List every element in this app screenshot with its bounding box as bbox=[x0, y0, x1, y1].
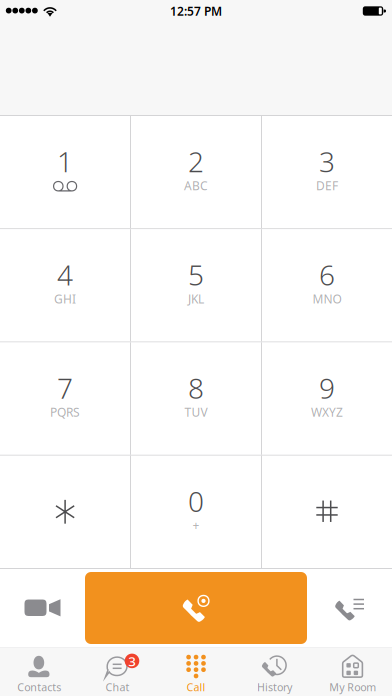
button[interactable] bbox=[0, 456, 130, 568]
staticText: My Room bbox=[329, 680, 376, 694]
staticText: 1 bbox=[57, 143, 73, 180]
staticText: Chat bbox=[106, 680, 130, 694]
staticText: 2 bbox=[188, 143, 204, 180]
staticText: WXYZ bbox=[311, 404, 343, 420]
button[interactable]: 2 bbox=[131, 116, 261, 228]
staticText: 5 bbox=[188, 256, 204, 293]
button[interactable]: 5 bbox=[131, 229, 261, 341]
button[interactable]: Call bbox=[157, 647, 235, 696]
staticText: Call bbox=[186, 680, 205, 694]
staticText: 6 bbox=[319, 256, 335, 293]
button[interactable]: 6 bbox=[262, 229, 392, 341]
staticText: TUV bbox=[184, 404, 207, 420]
staticText: DEF bbox=[316, 177, 338, 193]
button[interactable]: 4 bbox=[0, 229, 130, 341]
staticText: 3 bbox=[128, 652, 136, 670]
staticText: JKL bbox=[188, 291, 204, 307]
staticText: PQRS bbox=[50, 404, 80, 420]
staticText: Contacts bbox=[17, 680, 61, 694]
button[interactable]: Recent calls bbox=[307, 570, 392, 646]
button[interactable] bbox=[262, 456, 392, 568]
button[interactable]: 7 bbox=[0, 342, 130, 455]
button[interactable]: History bbox=[235, 647, 314, 696]
staticText: 4 bbox=[57, 256, 73, 293]
button[interactable]: 9 bbox=[262, 342, 392, 455]
staticText: 8 bbox=[188, 369, 204, 407]
button[interactable]: 8 bbox=[131, 342, 261, 455]
staticText: MNO bbox=[312, 291, 341, 307]
button[interactable]: Call bbox=[85, 572, 307, 644]
staticText: GHI bbox=[54, 291, 76, 307]
staticText: 12:57 PM bbox=[170, 3, 222, 19]
staticText: + bbox=[192, 517, 199, 533]
staticText: 9 bbox=[319, 369, 335, 407]
button[interactable]: 0 bbox=[131, 456, 261, 568]
button[interactable]: 1 bbox=[0, 116, 130, 228]
button[interactable]: 3 bbox=[262, 116, 392, 228]
button[interactable]: Contacts bbox=[0, 647, 78, 696]
button[interactable]: My Room bbox=[314, 647, 392, 696]
staticText: 7 bbox=[57, 369, 73, 407]
button[interactable]: Video call bbox=[0, 570, 85, 646]
staticText: ABC bbox=[184, 177, 208, 193]
staticText: 3 bbox=[319, 143, 335, 180]
staticText: 0 bbox=[188, 483, 204, 520]
button[interactable]: 3 bbox=[78, 647, 157, 696]
staticText: History bbox=[257, 680, 292, 694]
